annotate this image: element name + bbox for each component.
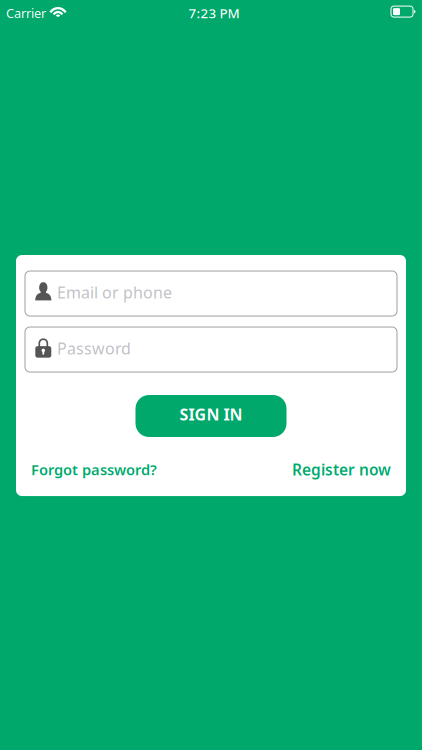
staticText: SIGN IN bbox=[179, 403, 242, 425]
staticText: Forgot password? bbox=[31, 459, 157, 479]
button[interactable]: Password bbox=[25, 327, 397, 372]
button[interactable]: Email or phone bbox=[25, 271, 397, 316]
staticText: Register now bbox=[292, 459, 391, 480]
button[interactable]: Register now bbox=[292, 459, 391, 480]
staticText: 7:23 PM bbox=[188, 4, 239, 22]
staticText: Password bbox=[57, 337, 131, 359]
button[interactable]: Forgot password? bbox=[31, 459, 157, 479]
staticText: Email or phone bbox=[57, 281, 172, 303]
staticText: Carrier bbox=[6, 4, 46, 22]
button[interactable]: SIGN IN bbox=[135, 395, 286, 437]
